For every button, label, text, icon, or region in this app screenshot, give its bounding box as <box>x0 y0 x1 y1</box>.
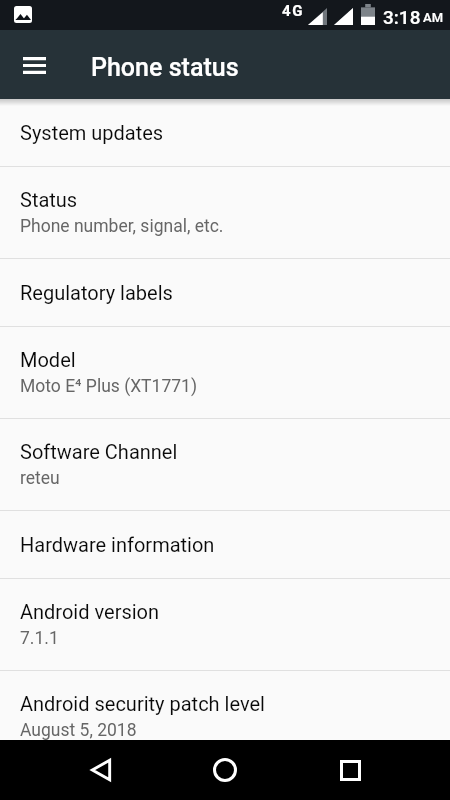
staticText: 4G <box>282 2 305 20</box>
staticText: Status <box>20 188 78 211</box>
button[interactable]: Status <box>0 167 450 258</box>
staticText: Software Channel <box>20 440 178 463</box>
staticText: AM <box>423 10 444 25</box>
button[interactable]: Back <box>77 746 125 794</box>
staticText: Model <box>20 348 76 371</box>
staticText: 3:18 <box>383 6 421 28</box>
button[interactable]: Open navigation drawer <box>14 45 54 85</box>
button[interactable]: Android version <box>0 579 450 670</box>
staticText: Moto E⁴ Plus (XT1771) <box>20 376 197 397</box>
button[interactable]: Model <box>0 327 450 418</box>
button[interactable]: Hardware information <box>0 511 450 578</box>
button[interactable]: Home <box>201 746 249 794</box>
staticText: Phone number, signal, etc. <box>20 216 224 237</box>
staticText: August 5, 2018 <box>20 720 137 741</box>
staticText: Android version <box>20 600 160 623</box>
staticText: Phone status <box>91 53 239 82</box>
staticText: Regulatory labels <box>20 281 173 304</box>
staticText: Hardware information <box>20 533 215 556</box>
staticText: 7.1.1 <box>20 628 59 649</box>
button[interactable]: Android security patch level <box>0 671 450 762</box>
button[interactable]: Regulatory labels <box>0 259 450 326</box>
staticText: Android security patch level <box>20 692 265 715</box>
button[interactable]: System updates <box>0 99 450 166</box>
button[interactable]: Software Channel <box>0 419 450 510</box>
staticText: reteu <box>20 468 60 489</box>
button[interactable]: Recent apps <box>326 746 374 794</box>
staticText: System updates <box>20 121 164 144</box>
